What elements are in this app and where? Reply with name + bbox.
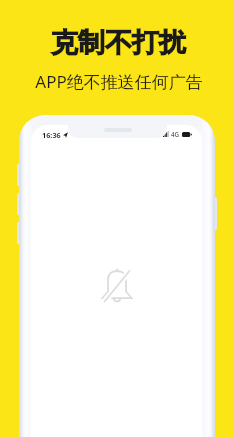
staticText: 克制不打扰 xyxy=(51,26,186,60)
staticText: APP绝不推送任何广告 xyxy=(35,70,203,93)
staticText: 16:36 xyxy=(42,130,61,140)
staticText: 4G xyxy=(171,130,180,138)
